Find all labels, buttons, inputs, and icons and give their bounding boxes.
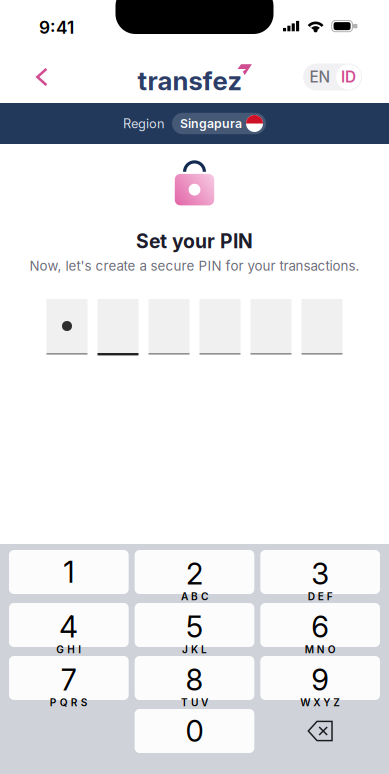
staticText: 0: [185, 713, 203, 749]
staticText: M N O: [305, 643, 336, 656]
button[interactable]: 3: [260, 550, 380, 594]
button[interactable]: 2: [135, 550, 254, 594]
staticText: 7: [61, 662, 77, 697]
staticText: 6: [311, 609, 329, 644]
staticText: Now, let's create a secure PIN for your …: [29, 258, 359, 274]
button[interactable]: 9: [260, 656, 380, 700]
staticText: 8: [185, 662, 203, 697]
staticText: T U V: [181, 696, 208, 709]
staticText: 4: [59, 609, 78, 644]
button[interactable]: 4: [9, 603, 129, 647]
button[interactable]: 7: [9, 656, 129, 700]
staticText: Set your PIN: [136, 229, 253, 253]
staticText: 5: [186, 609, 203, 644]
staticText: ID: [341, 68, 356, 86]
staticText: 2: [186, 556, 203, 591]
staticText: transfez: [137, 65, 241, 96]
staticText: 1: [63, 554, 74, 590]
staticText: D E F: [308, 590, 333, 603]
button[interactable]: 0: [135, 709, 254, 753]
staticText: 9:41: [39, 17, 74, 38]
staticText: 9: [311, 662, 329, 697]
button[interactable]: 8: [135, 656, 254, 700]
button[interactable]: Singapura: [172, 113, 266, 134]
button[interactable]: 6: [260, 603, 380, 647]
staticText: Singapura: [180, 116, 242, 131]
button[interactable]: 1: [9, 550, 129, 594]
staticText: 3: [311, 556, 329, 591]
staticText: EN: [309, 68, 330, 86]
staticText: W X Y Z: [300, 696, 340, 709]
button[interactable]: Back: [23, 55, 61, 98]
staticText: A B C: [181, 590, 208, 603]
button[interactable]: Delete: [260, 709, 380, 753]
button[interactable]: EN: [303, 63, 362, 90]
staticText: G H I: [56, 643, 81, 656]
staticText: J K L: [182, 643, 207, 656]
staticText: Region: [123, 116, 165, 131]
staticText: P Q R S: [50, 696, 88, 709]
button[interactable]: 5: [135, 603, 254, 647]
